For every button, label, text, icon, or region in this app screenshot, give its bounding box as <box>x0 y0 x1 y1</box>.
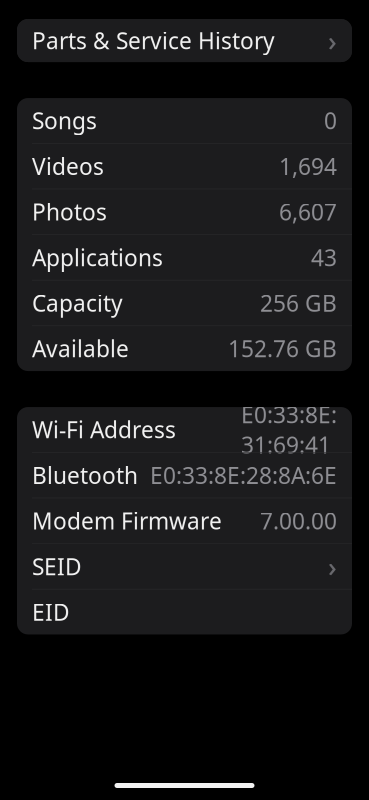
staticText: Photos <box>32 197 107 227</box>
staticText: › <box>328 23 337 58</box>
staticText: Bluetooth <box>32 460 138 490</box>
staticText: 0 <box>324 105 337 136</box>
staticText: 6,607 <box>279 197 337 227</box>
staticText: Available <box>32 333 129 364</box>
staticText: Parts & Service History <box>32 25 275 56</box>
staticText: 43 <box>311 242 337 272</box>
staticText: E0:33:8E:28:8A:6E <box>150 460 337 490</box>
staticText: Songs <box>32 105 97 136</box>
staticText: SEID <box>32 551 82 581</box>
staticText: 1,694 <box>279 151 337 181</box>
staticText: E0:33:8E:31:69:41 <box>241 399 337 460</box>
staticText: Modem Firmware <box>32 506 222 536</box>
staticText: Applications <box>32 242 163 272</box>
button[interactable]: Parts & Service History <box>17 19 352 62</box>
staticText: Videos <box>32 151 104 181</box>
staticText: 7.00.00 <box>260 506 337 536</box>
staticText: EID <box>32 597 70 627</box>
staticText: Capacity <box>32 288 123 318</box>
staticText: › <box>328 549 337 584</box>
staticText: Wi-Fi Address <box>32 414 176 445</box>
button[interactable]: SEID <box>17 544 352 589</box>
staticText: 152.76 GB <box>228 333 337 364</box>
staticText: 256 GB <box>260 288 337 318</box>
